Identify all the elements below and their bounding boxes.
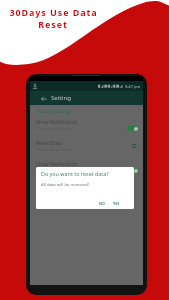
staticText: Show Notification — [36, 119, 78, 126]
staticText: Setting — [51, 94, 71, 102]
button[interactable]: Show Notification — [30, 116, 143, 137]
staticText: YES — [113, 201, 120, 206]
staticText: NO — [99, 201, 105, 206]
button[interactable]: YES — [111, 200, 122, 207]
staticText: Show Notification — [36, 161, 78, 168]
staticText: 5:47 pm — [125, 84, 141, 89]
button[interactable]: Reset Data — [30, 137, 143, 158]
button[interactable]: Back — [39, 94, 48, 103]
button[interactable]: NO — [97, 200, 107, 207]
staticText: Reset — [38, 18, 68, 30]
button[interactable]: Show Notification — [30, 158, 143, 179]
staticText: Notification is Enabled — [36, 168, 73, 173]
staticText: General Settings — [36, 108, 71, 114]
staticText: Do you want to reset data? — [41, 170, 109, 177]
staticText: Reset Data — [36, 140, 62, 147]
staticText: All data will be removed! — [41, 182, 90, 188]
staticText: 30Days Use Data — [9, 6, 98, 18]
